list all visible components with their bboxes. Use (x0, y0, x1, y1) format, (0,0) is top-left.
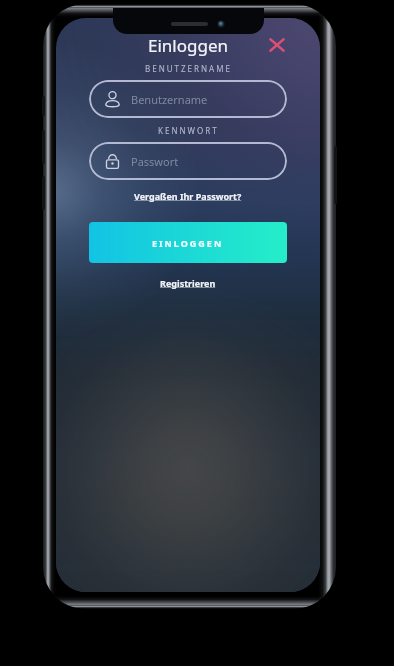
button[interactable]: Close (266, 34, 288, 56)
staticText: BENUTZERNAME (145, 63, 232, 74)
staticText: Vergaßen Ihr Passwort? (134, 190, 242, 202)
button[interactable]: Benutzername (89, 80, 287, 118)
staticText: EINLOGGEN (152, 237, 224, 249)
staticText: Registrieren (160, 277, 216, 289)
staticText: Benutzername (131, 92, 208, 107)
button[interactable]: Vergaßen Ihr Passwort? (134, 190, 242, 202)
button[interactable]: Passwort (89, 142, 287, 180)
staticText: Passwort (131, 154, 179, 169)
button[interactable]: EINLOGGEN (89, 222, 287, 263)
staticText: Einloggen (148, 34, 229, 57)
button[interactable]: Registrieren (160, 277, 216, 289)
staticText: KENNWORT (158, 125, 219, 136)
